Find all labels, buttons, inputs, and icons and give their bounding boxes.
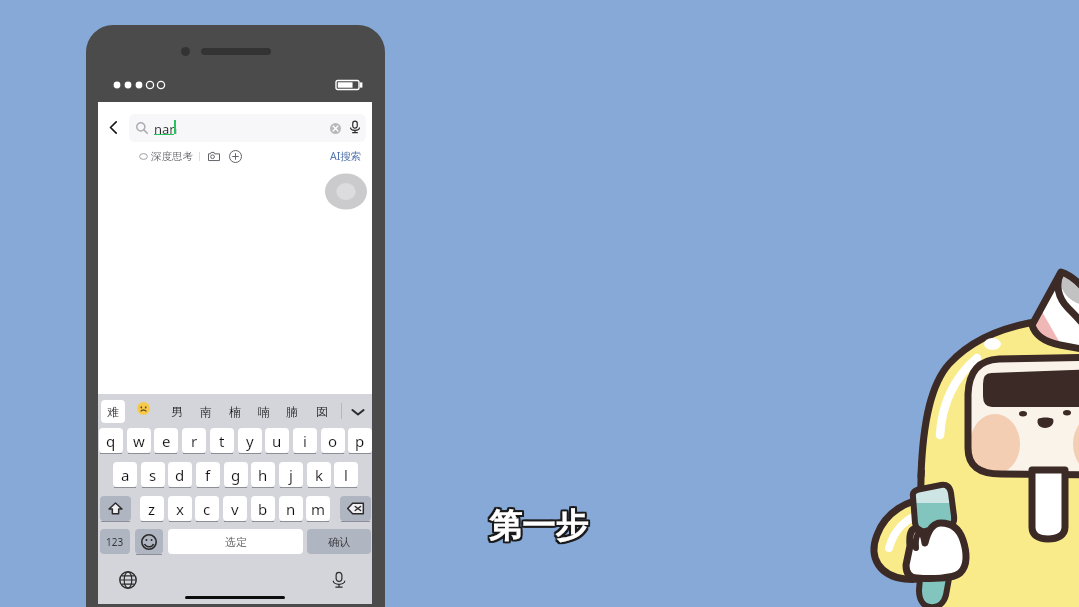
button[interactable]: p: [348, 428, 372, 453]
staticText: 楠: [229, 404, 241, 419]
button[interactable]: s: [141, 462, 165, 487]
button[interactable]: v: [223, 496, 247, 521]
staticText: 腩: [286, 404, 298, 419]
button[interactable]: z: [140, 496, 164, 521]
staticText: t: [219, 431, 225, 451]
button[interactable]: 深度思考: [139, 149, 193, 164]
staticText: m: [311, 499, 326, 519]
staticText: 第一步: [489, 505, 588, 547]
staticText: x: [176, 499, 184, 519]
button[interactable]: 123: [100, 529, 130, 554]
staticText: 123: [106, 535, 124, 549]
button[interactable]: y: [238, 428, 262, 453]
staticText: 第一步: [487, 505, 586, 547]
button[interactable]: t: [210, 428, 234, 453]
button[interactable]: [136, 401, 150, 415]
staticText: f: [205, 465, 211, 485]
staticText: 第一步: [487, 503, 586, 545]
button[interactable]: e: [154, 428, 178, 453]
button[interactable]: w: [127, 428, 151, 453]
staticText: z: [148, 499, 156, 519]
staticText: y: [246, 431, 254, 451]
button[interactable]: i: [293, 428, 317, 453]
staticText: c: [203, 499, 211, 519]
staticText: a: [121, 465, 130, 485]
button[interactable]: q: [99, 428, 123, 453]
staticText: b: [258, 499, 268, 519]
staticText: i: [303, 431, 307, 451]
button[interactable]: n: [279, 496, 303, 521]
button[interactable]: h: [251, 462, 275, 487]
staticText: p: [355, 431, 365, 451]
button[interactable]: 选定: [168, 529, 303, 554]
button[interactable]: g: [224, 462, 248, 487]
staticText: k: [315, 465, 324, 485]
staticText: 第一步: [491, 503, 590, 545]
button[interactable]: a: [113, 462, 137, 487]
staticText: s: [149, 465, 157, 485]
button[interactable]: 南: [199, 400, 213, 422]
staticText: w: [133, 431, 145, 451]
button[interactable]: 男: [170, 400, 184, 422]
button[interactable]: Voice input: [328, 569, 350, 591]
button[interactable]: AI搜索: [330, 149, 362, 163]
button[interactable]: j: [279, 462, 303, 487]
button[interactable]: Backspace: [340, 496, 371, 521]
button[interactable]: Add: [228, 149, 242, 163]
staticText: 难: [107, 404, 119, 419]
button[interactable]: Shift: [100, 496, 131, 521]
staticText: AI搜索: [330, 149, 362, 163]
staticText: 第一步: [491, 507, 590, 549]
staticText: 第一步: [489, 507, 588, 549]
staticText: 第一步: [491, 504, 590, 546]
staticText: 喃: [258, 404, 270, 419]
staticText: o: [328, 431, 338, 451]
button[interactable]: Hide keyboard: [346, 400, 370, 423]
staticText: n: [286, 499, 296, 519]
button[interactable]: 囡: [315, 400, 329, 422]
staticText: 第一步: [488, 507, 587, 549]
staticText: 第一步: [491, 506, 590, 548]
staticText: 第一步: [487, 507, 586, 549]
button[interactable]: Voice search: [345, 117, 365, 137]
staticText: nan: [154, 120, 178, 138]
staticText: 南: [200, 404, 212, 419]
button[interactable]: 难: [101, 400, 125, 423]
button[interactable]: Back: [102, 116, 125, 139]
button[interactable]: u: [265, 428, 289, 453]
button[interactable]: [129, 114, 366, 142]
staticText: 第一步: [487, 506, 586, 548]
button[interactable]: Emoji keyboard: [135, 529, 163, 554]
button[interactable]: o: [321, 428, 345, 453]
button[interactable]: 确认: [307, 529, 371, 554]
staticText: u: [272, 431, 282, 451]
button[interactable]: 腩: [285, 400, 299, 422]
button[interactable]: m: [306, 496, 330, 521]
staticText: l: [344, 465, 348, 485]
staticText: 第一步: [490, 507, 589, 549]
button[interactable]: 楠: [228, 400, 242, 422]
staticText: r: [191, 431, 198, 451]
button[interactable]: c: [195, 496, 219, 521]
staticText: 第一步: [488, 503, 587, 545]
button[interactable]: d: [168, 462, 192, 487]
button[interactable]: k: [307, 462, 331, 487]
staticText: 第一步: [487, 504, 586, 546]
staticText: q: [106, 431, 116, 451]
staticText: j: [289, 465, 293, 485]
staticText: 确认: [328, 535, 350, 549]
button[interactable]: b: [251, 496, 275, 521]
staticText: 选定: [225, 535, 247, 549]
button[interactable]: l: [334, 462, 358, 487]
staticText: v: [231, 499, 239, 519]
staticText: h: [258, 465, 268, 485]
button[interactable]: 喃: [257, 400, 271, 422]
staticText: g: [231, 465, 241, 485]
button[interactable]: Search by camera: [207, 149, 221, 163]
button[interactable]: r: [182, 428, 206, 453]
button[interactable]: Clear text: [325, 118, 345, 138]
button[interactable]: f: [196, 462, 220, 487]
button[interactable]: Switch language: [117, 569, 139, 591]
staticText: 第一步: [489, 503, 588, 545]
button[interactable]: x: [168, 496, 192, 521]
